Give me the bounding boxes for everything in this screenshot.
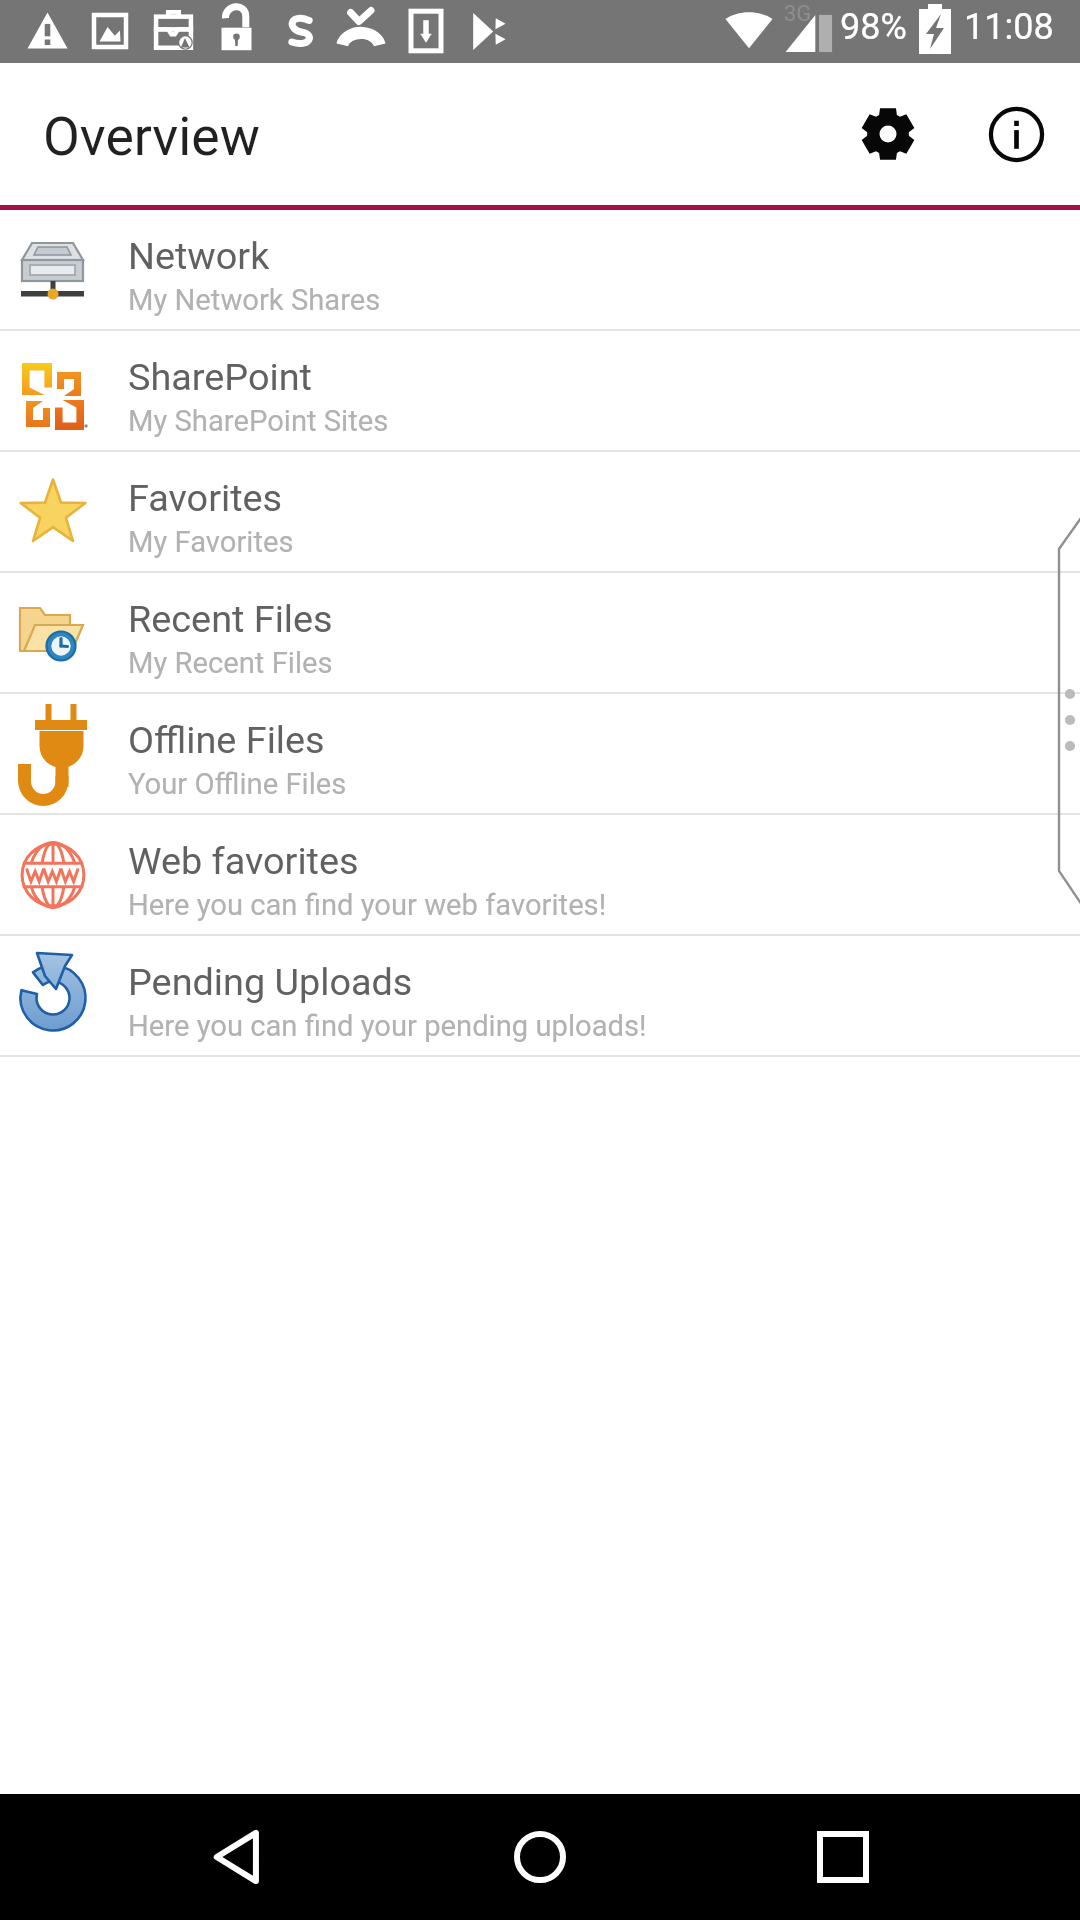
button[interactable]: SharePoint — [0, 331, 1080, 452]
staticText: 98% — [840, 6, 907, 48]
staticText: 3G — [784, 1, 812, 27]
staticText: 11:08 — [964, 6, 1054, 48]
button[interactable]: Back — [173, 1794, 303, 1920]
staticText: Offline Files — [128, 718, 325, 762]
button[interactable]: Web favorites — [0, 815, 1080, 936]
staticText: Network — [128, 234, 270, 278]
button[interactable]: Recent Files — [0, 573, 1080, 694]
button[interactable]: Info — [968, 86, 1064, 182]
staticText: My Network Shares — [128, 283, 381, 317]
button[interactable]: Pending Uploads — [0, 936, 1080, 1057]
button[interactable]: Network — [0, 210, 1080, 331]
staticText: Your Offline Files — [128, 767, 347, 801]
staticText: Here you can find your web favorites! — [128, 888, 607, 922]
button[interactable]: Recents — [778, 1794, 908, 1920]
staticText: Here you can find your pending uploads! — [128, 1009, 647, 1043]
staticText: Web favorites — [128, 839, 359, 883]
staticText: Pending Uploads — [128, 960, 413, 1004]
staticText: Recent Files — [128, 597, 333, 641]
button[interactable]: Favorites — [0, 452, 1080, 573]
staticText: My Recent Files — [128, 646, 333, 680]
staticText: My Favorites — [128, 525, 294, 559]
button[interactable]: Home — [475, 1794, 605, 1920]
staticText: Favorites — [128, 476, 283, 520]
button[interactable]: Offline Files — [0, 694, 1080, 815]
staticText: SharePoint — [128, 355, 312, 399]
staticText: My SharePoint Sites — [128, 404, 389, 438]
staticText: Overview — [43, 105, 260, 168]
button[interactable]: Settings — [840, 86, 936, 182]
